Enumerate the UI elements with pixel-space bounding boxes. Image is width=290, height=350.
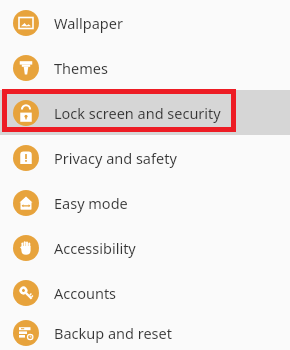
staticText: Lock screen and security [54, 103, 221, 123]
staticText: Accounts [54, 283, 117, 303]
button[interactable]: Easy mode [0, 180, 290, 225]
staticText: Accessibility [54, 238, 136, 258]
button[interactable]: Accessibility [0, 225, 290, 270]
staticText: Themes [54, 58, 108, 78]
button[interactable]: Privacy and safety [0, 135, 290, 180]
staticText: Privacy and safety [54, 148, 177, 168]
staticText: Backup and reset [54, 323, 172, 343]
button[interactable]: Backup and reset [0, 315, 290, 350]
button[interactable]: Themes [0, 45, 290, 90]
button[interactable]: Accounts [0, 270, 290, 315]
button[interactable]: Wallpaper [0, 0, 290, 45]
staticText: Wallpaper [54, 13, 123, 33]
button[interactable]: Lock screen and security [0, 90, 290, 135]
staticText: Easy mode [54, 193, 128, 213]
